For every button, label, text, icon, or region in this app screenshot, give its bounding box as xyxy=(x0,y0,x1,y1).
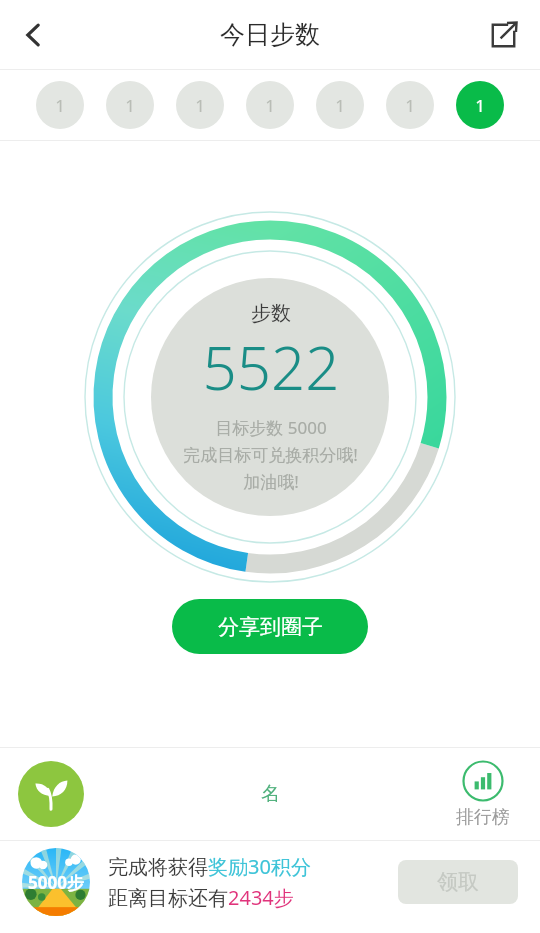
staticText: 1 xyxy=(265,94,275,117)
staticText: 距离目标还有2434步 xyxy=(108,884,294,911)
staticText: 步数 xyxy=(251,301,291,326)
staticText: 今日步数 xyxy=(220,19,320,50)
button[interactable]: 1 xyxy=(386,81,434,129)
staticText: 5522 xyxy=(202,326,340,408)
staticText: 1 xyxy=(475,94,485,117)
staticText: 1 xyxy=(55,94,65,117)
button[interactable]: 1 xyxy=(246,81,294,129)
staticText: 完成将获得奖励30积分 xyxy=(108,853,311,880)
staticText: 1 xyxy=(405,94,415,117)
staticText: 5000步 xyxy=(28,871,84,894)
button[interactable]: 1 xyxy=(316,81,364,129)
button[interactable]: Share xyxy=(474,6,532,64)
button[interactable]: 排行榜 xyxy=(456,760,510,829)
button[interactable]: 1 xyxy=(106,81,154,129)
staticText: 分享到圈子 xyxy=(218,614,323,640)
button[interactable]: 领取 xyxy=(398,860,518,904)
button[interactable]: Plant xyxy=(18,761,84,827)
button[interactable]: 分享到圈子 xyxy=(172,599,368,654)
staticText: 排行榜 xyxy=(456,806,510,829)
button[interactable]: 5000步 xyxy=(20,841,518,923)
staticText: 完成目标可兑换积分哦! xyxy=(183,443,358,466)
button[interactable]: 1 xyxy=(456,81,504,129)
button[interactable]: 1 xyxy=(36,81,84,129)
button[interactable]: 1 xyxy=(176,81,224,129)
button[interactable]: Back xyxy=(4,6,62,64)
staticText: 1 xyxy=(335,94,345,117)
staticText: 目标步数 5000 xyxy=(215,416,327,439)
staticText: 领取 xyxy=(437,869,479,895)
staticText: 1 xyxy=(195,94,205,117)
staticText: 名 xyxy=(261,782,280,806)
staticText: 加油哦! xyxy=(243,470,299,493)
button[interactable]: 名 xyxy=(205,759,335,829)
staticText: 1 xyxy=(125,94,135,117)
